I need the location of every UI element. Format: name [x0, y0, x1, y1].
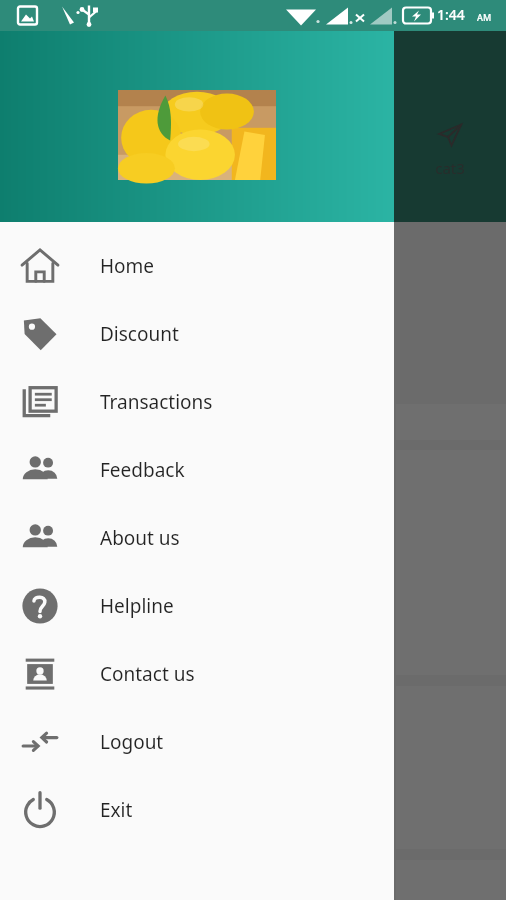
staticText: Feedback [100, 457, 185, 483]
button[interactable]: Contact us [0, 640, 394, 708]
staticText: About us [100, 525, 180, 551]
button[interactable]: Helpline [0, 572, 394, 640]
button[interactable]: cat3 [415, 120, 485, 178]
staticText: Exit [100, 797, 133, 823]
staticText: Helpline [100, 593, 174, 619]
button[interactable]: Discount [0, 300, 394, 368]
button[interactable]: Transactions [0, 368, 394, 436]
button[interactable]: Home [0, 232, 394, 300]
staticText: Discount [100, 321, 179, 347]
staticText: Contact us [100, 661, 195, 687]
button[interactable]: Exit [0, 776, 394, 844]
button[interactable]: Logout [0, 708, 394, 776]
staticText: Home [100, 253, 155, 279]
button[interactable]: Feedback [0, 436, 394, 504]
staticText: 1:44 [437, 5, 465, 24]
staticText: cat3 [435, 158, 465, 178]
staticText: Logout [100, 729, 164, 755]
staticText: Transactions [100, 389, 213, 415]
staticText: AM [477, 11, 492, 23]
button[interactable]: About us [0, 504, 394, 572]
